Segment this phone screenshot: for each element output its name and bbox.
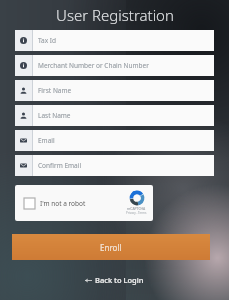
staticText: Email: [38, 136, 55, 145]
staticText: Enroll: [100, 242, 122, 253]
button[interactable]: Merchant Number or Chain Number: [15, 55, 214, 76]
button[interactable]: First Name: [15, 80, 214, 101]
button[interactable]: Confirm Email: [15, 155, 214, 176]
other: I'm not a robot checkbox: [24, 198, 35, 209]
staticText: Privacy - Terms: [126, 211, 147, 215]
button[interactable]: Tax Id: [15, 30, 214, 51]
staticText: Tax Id: [38, 36, 57, 45]
staticText: Last Name: [38, 111, 71, 120]
staticText: User Registration: [56, 5, 174, 25]
staticText: reCAPTCHA: [127, 206, 146, 211]
staticText: Confirm Email: [38, 161, 82, 170]
button[interactable]: Last Name: [15, 105, 214, 126]
staticText: Back to Login: [95, 275, 144, 285]
button[interactable]: I'm not a robot checkbox: [15, 185, 153, 221]
staticText: Merchant Number or Chain Number: [38, 61, 149, 70]
button[interactable]: Enroll: [12, 234, 210, 260]
staticText: First Name: [38, 86, 72, 95]
staticText: I'm not a robot: [40, 199, 86, 208]
button[interactable]: Back to Login: [77, 272, 152, 288]
button[interactable]: Email: [15, 130, 214, 151]
